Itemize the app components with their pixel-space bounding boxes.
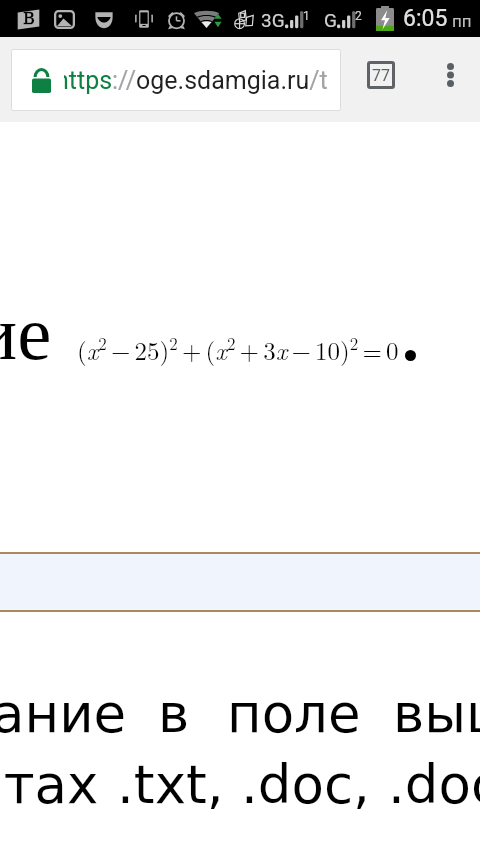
staticText: (x2 − 25)2 + (x2 + 3x − 10)2 = 0 bbox=[77, 331, 399, 367]
staticText: пп bbox=[452, 11, 472, 31]
staticText: G bbox=[324, 9, 337, 31]
button[interactable]: https://oge.sdamgia.ru/t bbox=[11, 49, 341, 111]
button[interactable]: Tabs, 77 open bbox=[352, 37, 410, 122]
staticText: нтах bbox=[0, 754, 99, 816]
staticText: .txt, bbox=[117, 754, 224, 816]
staticText: 1 bbox=[303, 9, 310, 23]
button[interactable]: More options bbox=[422, 37, 478, 122]
staticText: https://oge.sdamgia.ru/t bbox=[64, 66, 328, 95]
staticText: 2 bbox=[355, 9, 362, 23]
staticText: 6:05 bbox=[403, 5, 448, 32]
staticText: 3G bbox=[261, 9, 285, 31]
staticText: ание bbox=[0, 683, 127, 745]
staticText: .doc, bbox=[241, 754, 370, 816]
staticText: 77 bbox=[372, 66, 390, 85]
staticText: B bbox=[23, 9, 35, 28]
staticText: .docx bbox=[388, 754, 480, 816]
staticText: ие bbox=[0, 290, 52, 375]
staticText: выше bbox=[393, 683, 480, 745]
staticText: поле bbox=[227, 683, 361, 745]
staticText: в bbox=[158, 683, 190, 745]
